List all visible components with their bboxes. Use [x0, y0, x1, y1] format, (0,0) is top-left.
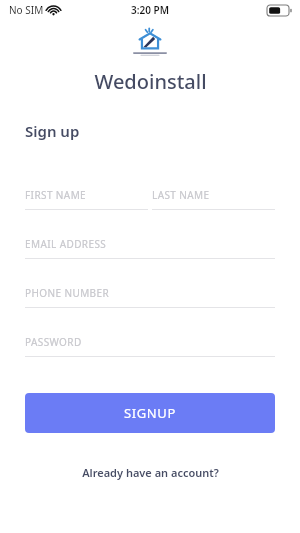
staticText: 3:20 PM: [131, 3, 169, 17]
staticText: LAST NAME: [152, 188, 210, 202]
staticText: Sign up: [25, 121, 80, 141]
staticText: Already have an account?: [82, 465, 219, 480]
staticText: No SIM: [9, 3, 44, 17]
button[interactable]: SIGNUP: [25, 393, 275, 433]
button[interactable]: FIRST NAME: [25, 188, 148, 210]
staticText: SIGNUP: [124, 404, 176, 422]
button[interactable]: EMAIL ADDRESS: [25, 237, 275, 259]
button[interactable]: Already have an account?: [0, 465, 300, 480]
staticText: FIRST NAME: [25, 188, 87, 202]
staticText: Wedoinstall: [94, 68, 207, 95]
button[interactable]: PASSWORD: [25, 335, 275, 357]
staticText: EMAIL ADDRESS: [25, 237, 107, 251]
staticText: PASSWORD: [25, 335, 82, 349]
button[interactable]: PHONE NUMBER: [25, 286, 275, 308]
staticText: PHONE NUMBER: [25, 286, 110, 300]
button[interactable]: LAST NAME: [152, 188, 275, 210]
